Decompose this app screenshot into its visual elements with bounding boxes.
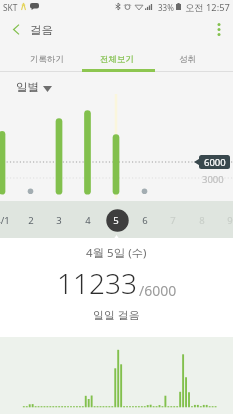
staticText: 9 xyxy=(227,214,233,227)
staticText: 7 xyxy=(170,214,176,227)
staticText: 3 xyxy=(56,214,62,227)
staticText: 4월 5일 (수) xyxy=(86,245,147,261)
button[interactable]: 9 xyxy=(218,208,233,232)
button[interactable]: 8 xyxy=(190,208,214,232)
staticText: 6 xyxy=(142,214,148,227)
staticText: /6000 xyxy=(139,281,177,300)
button[interactable]: More options xyxy=(205,13,233,45)
button[interactable]: 성취 xyxy=(152,45,222,72)
button[interactable]: 3 xyxy=(47,208,71,232)
button[interactable]: 6 xyxy=(133,208,157,232)
button[interactable]: Back xyxy=(2,13,30,45)
staticText: 오전 12:57 xyxy=(185,1,230,14)
staticText: 33% xyxy=(158,2,174,13)
staticText: 전체보기 xyxy=(100,54,134,65)
staticText: 5 xyxy=(113,214,119,227)
staticText: 6000 xyxy=(204,156,226,169)
button[interactable]: 일별 xyxy=(8,76,60,98)
staticText: 2 xyxy=(28,214,34,227)
button[interactable]: 5 xyxy=(104,208,128,232)
staticText: 일일 걸음 xyxy=(93,307,140,322)
staticText: 성취 xyxy=(179,54,196,65)
staticText: SKT xyxy=(3,2,18,13)
staticText: 4/1 xyxy=(0,214,10,227)
staticText: 걸음 xyxy=(30,23,53,37)
button[interactable]: 전체보기 xyxy=(82,45,152,72)
staticText: 11233 xyxy=(57,264,137,302)
staticText: 기록하기 xyxy=(30,54,64,65)
staticText: 일별 xyxy=(16,80,39,94)
button[interactable]: 2 xyxy=(19,208,43,232)
button[interactable]: 4/1 xyxy=(0,208,14,232)
staticText: 3000 xyxy=(202,173,224,186)
button[interactable]: 기록하기 xyxy=(12,45,82,72)
button[interactable]: 4 xyxy=(76,208,100,232)
staticText: 8 xyxy=(199,214,205,227)
staticText: 4 xyxy=(85,214,91,227)
